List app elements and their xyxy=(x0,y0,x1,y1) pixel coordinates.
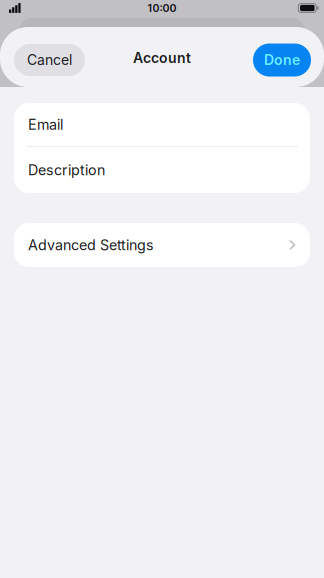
staticText: Advanced Settings xyxy=(28,236,154,254)
staticText: Cancel xyxy=(27,51,72,68)
button[interactable]: Email xyxy=(14,103,310,146)
staticText: Email xyxy=(28,116,63,133)
button[interactable]: Advanced Settings xyxy=(14,223,310,267)
staticText: Description xyxy=(28,161,105,179)
button[interactable]: Done xyxy=(253,43,311,76)
staticText: Account xyxy=(133,49,191,66)
button[interactable]: Description xyxy=(14,147,310,193)
button[interactable]: Cancel xyxy=(14,44,85,76)
staticText: 10:00 xyxy=(147,1,176,14)
staticText: Done xyxy=(264,51,300,68)
